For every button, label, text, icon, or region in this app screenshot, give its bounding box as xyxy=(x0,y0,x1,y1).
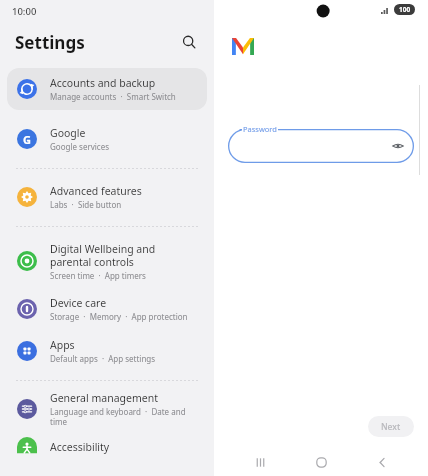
staticText: Google services xyxy=(50,141,110,152)
staticText: 10:00 xyxy=(12,5,37,18)
button[interactable]: Apps xyxy=(7,330,207,372)
button[interactable]: Password xyxy=(228,129,414,163)
button[interactable]: Recents xyxy=(245,448,275,476)
button[interactable]: Search xyxy=(176,29,202,55)
staticText: Digital Wellbeing and parental controls xyxy=(50,242,197,269)
staticText: Apps xyxy=(50,338,75,352)
staticText: Next xyxy=(381,421,401,433)
button[interactable]: Device care xyxy=(7,288,207,330)
staticText: G xyxy=(23,132,31,147)
staticText: Storage · Memory · App protection xyxy=(50,311,188,322)
staticText: Default apps · App settings xyxy=(50,353,156,364)
staticText: Device care xyxy=(50,296,107,310)
staticText: Advanced features xyxy=(50,184,142,198)
staticText: Accessibility xyxy=(50,440,110,454)
button[interactable]: Digital Wellbeing and parental controls xyxy=(7,234,207,288)
staticText: Manage accounts · Smart Switch xyxy=(50,91,176,102)
staticText: Password xyxy=(243,124,277,134)
button[interactable]: Advanced features xyxy=(7,176,207,218)
button[interactable]: Accounts and backup xyxy=(7,68,207,110)
staticText: Google xyxy=(50,126,86,140)
staticText: Accounts and backup xyxy=(50,76,156,90)
staticText: Labs · Side button xyxy=(50,199,122,210)
button[interactable]: Next xyxy=(368,416,414,437)
staticText: Settings xyxy=(15,31,85,54)
staticText: 100 xyxy=(399,5,411,14)
button[interactable]: General management xyxy=(7,388,207,430)
button[interactable]: G xyxy=(7,118,207,160)
staticText: General management xyxy=(50,391,158,405)
button[interactable]: Accessibility xyxy=(7,430,207,464)
staticText: Screen time · App timers xyxy=(50,270,146,281)
button[interactable]: Home xyxy=(306,448,336,476)
staticText: Language and keyboard · Date and time xyxy=(50,406,197,427)
button[interactable]: Back xyxy=(367,448,397,476)
